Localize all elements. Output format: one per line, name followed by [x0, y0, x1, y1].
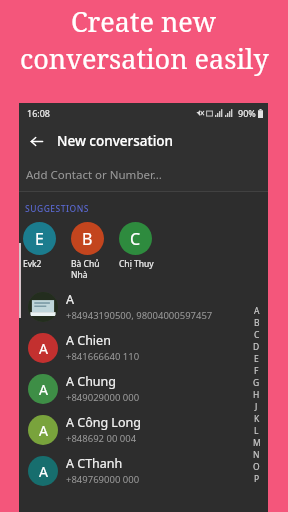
button[interactable]: Add Contact or Number…: [19, 159, 268, 191]
staticText: SUGGESTIONS: [25, 203, 89, 215]
staticText: A CThanh: [66, 455, 123, 472]
staticText: +848692 00 004: [66, 432, 137, 445]
staticText: N: [253, 449, 260, 461]
staticText: A: [39, 339, 48, 358]
staticText: +84943190500, 98004000597457: [66, 309, 213, 322]
staticText: New conversation: [57, 132, 174, 150]
staticText: Evk2: [23, 258, 42, 270]
button[interactable]: A: [19, 327, 268, 368]
staticText: +849769000 000: [66, 473, 140, 486]
staticText: A Chien: [66, 332, 111, 349]
staticText: +841666640 110: [66, 350, 140, 363]
button[interactable]: A: [19, 286, 268, 327]
staticText: P: [254, 473, 260, 485]
staticText: A: [66, 291, 74, 308]
staticText: H: [253, 389, 260, 401]
staticText: J: [255, 401, 258, 413]
button[interactable]: B: [71, 222, 119, 280]
button[interactable]: A: [19, 450, 268, 491]
staticText: A: [39, 462, 48, 481]
button[interactable]: E: [23, 222, 71, 270]
staticText: E: [35, 228, 44, 250]
staticText: A: [39, 380, 48, 399]
staticText: A Công Long: [66, 414, 141, 431]
staticText: E: [254, 353, 259, 365]
staticText: C: [130, 228, 141, 250]
staticText: O: [253, 461, 260, 473]
staticText: +849029000 000: [66, 391, 140, 404]
staticText: 90%: [238, 107, 256, 119]
staticText: B: [82, 228, 93, 250]
button[interactable]: Alphabet index: [251, 305, 262, 485]
staticText: Chị Thuy: [119, 258, 154, 270]
staticText: G: [253, 377, 260, 389]
button[interactable]: C: [119, 222, 167, 270]
staticText: D: [253, 341, 260, 353]
staticText: Create new: [71, 3, 217, 40]
staticText: conversation easily: [20, 40, 269, 77]
staticText: F: [254, 365, 259, 377]
staticText: A: [39, 421, 48, 440]
staticText: C: [254, 329, 260, 341]
staticText: A: [254, 305, 260, 317]
staticText: L: [254, 425, 259, 437]
staticText: B: [254, 317, 260, 329]
staticText: 16:08: [27, 107, 51, 119]
button[interactable]: A: [19, 409, 268, 450]
staticText: A Chung: [66, 373, 117, 390]
staticText: Add Contact or Number…: [26, 167, 162, 183]
staticText: K: [254, 413, 260, 425]
button[interactable]: Back: [22, 127, 50, 155]
button[interactable]: A: [19, 368, 268, 409]
staticText: Bà Chủ Nhà: [71, 258, 100, 280]
staticText: M: [253, 437, 261, 449]
